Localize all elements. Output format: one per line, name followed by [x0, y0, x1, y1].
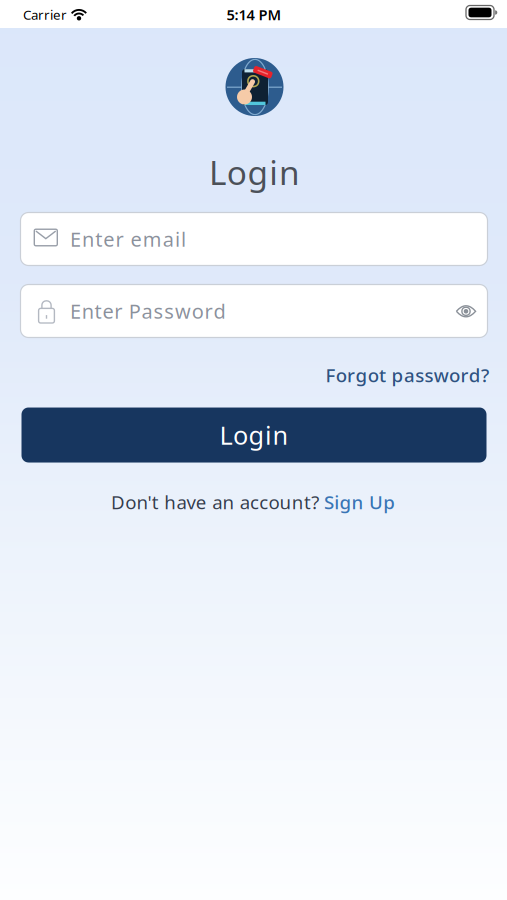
staticText: Forgot password?	[325, 363, 489, 387]
button[interactable]: Forgot password?	[239, 362, 489, 388]
staticText: Login	[219, 418, 288, 452]
staticText: Don't have an account?	[111, 490, 319, 514]
staticText: Enter Password	[70, 298, 225, 324]
button[interactable]	[456, 305, 476, 318]
staticText: 5:14 PM	[226, 5, 281, 24]
staticText: Login	[209, 150, 300, 194]
staticText: Enter email	[70, 226, 186, 252]
staticText: Sign Up	[324, 490, 395, 514]
button[interactable]: Sign Up	[324, 487, 434, 517]
button[interactable]: Enter email	[20, 212, 487, 265]
button[interactable]: Login	[21, 407, 486, 462]
staticText: Carrier	[23, 6, 67, 23]
button[interactable]: Enter Password	[20, 284, 487, 337]
